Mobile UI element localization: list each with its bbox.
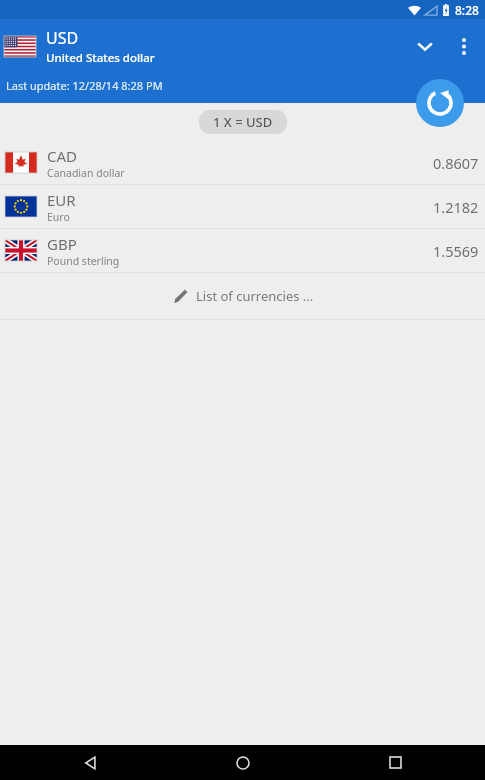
staticText: 1.2182 — [433, 197, 479, 217]
staticText: 1.5569 — [433, 241, 479, 261]
button[interactable]: Recent apps — [375, 745, 415, 780]
button[interactable]: CAD — [0, 141, 485, 184]
button[interactable]: GBP — [0, 229, 485, 272]
staticText: 0.8607 — [433, 153, 479, 173]
button[interactable]: More options — [447, 29, 481, 63]
staticText: Pound sterling — [47, 254, 120, 268]
staticText: Canadian dollar — [47, 166, 125, 180]
button[interactable]: Refresh rates — [416, 79, 464, 127]
staticText: GBP — [47, 234, 77, 254]
staticText: CAD — [47, 146, 78, 166]
button[interactable]: 1 X = USD — [199, 110, 287, 134]
button[interactable]: Back — [70, 745, 110, 780]
staticText: 1 X = USD — [213, 113, 273, 131]
button[interactable]: USD — [0, 19, 485, 73]
button[interactable]: List of currencies ... — [0, 273, 485, 319]
staticText: Last update: 12/28/14 8:28 PM — [6, 78, 163, 93]
staticText: Euro — [47, 210, 70, 224]
button[interactable]: EUR — [0, 185, 485, 228]
staticText: EUR — [47, 190, 76, 210]
button[interactable]: Expand — [403, 24, 447, 68]
staticText: USD — [46, 27, 79, 49]
staticText: United States dollar — [46, 50, 155, 66]
staticText: List of currencies ... — [196, 287, 314, 305]
staticText: 8:28 — [455, 2, 479, 18]
button[interactable]: Home — [223, 745, 263, 780]
